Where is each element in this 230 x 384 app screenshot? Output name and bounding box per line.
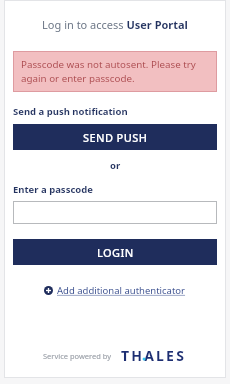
staticText: Send a push notification: [13, 105, 128, 118]
staticText: Passcode was not autosent. Please try ag…: [21, 58, 209, 85]
staticText: Enter a passcode: [13, 183, 93, 196]
button[interactable]: SEND PUSH: [13, 124, 217, 150]
staticText: SEND PUSH: [83, 130, 148, 145]
button[interactable]: Add additional authenticator: [40, 282, 190, 299]
staticText: Service powered by: [43, 351, 112, 361]
staticText: THALES: [121, 346, 187, 365]
staticText: or: [110, 159, 121, 172]
staticText: Add additional authenticator: [57, 284, 186, 297]
button[interactable]: LOGIN: [13, 239, 217, 265]
button[interactable]: Enter a passcode: [13, 201, 217, 224]
staticText: LOGIN: [97, 245, 134, 260]
staticText: Log in to access User Portal: [42, 17, 188, 32]
